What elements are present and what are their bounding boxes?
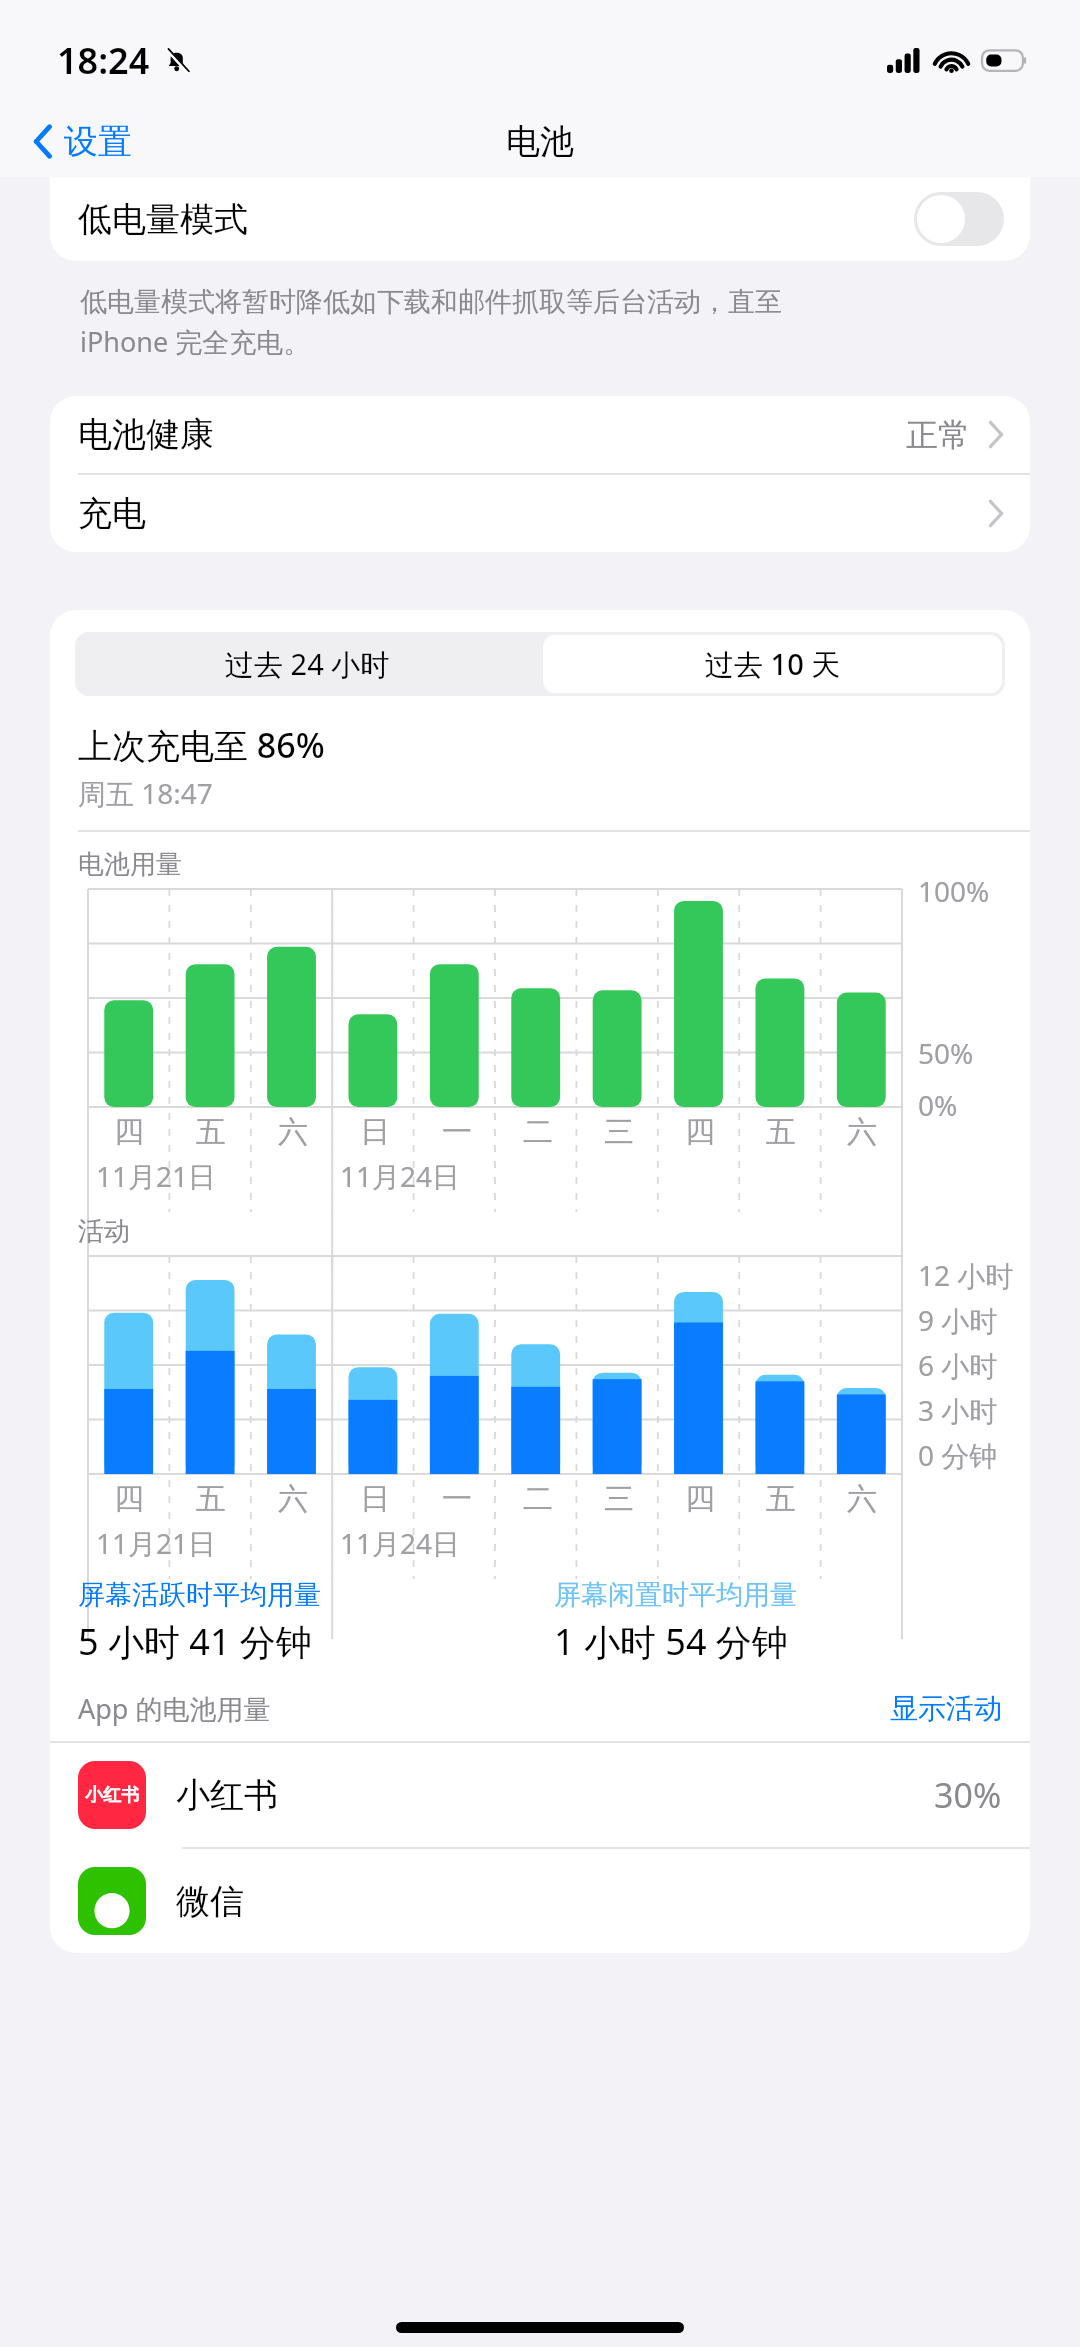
button[interactable]: 小红书 [50, 1743, 1030, 1847]
staticText: 三 [604, 1480, 634, 1518]
staticText: 0% [918, 1086, 958, 1124]
staticText: 100% [918, 872, 990, 910]
staticText: 四 [685, 1480, 715, 1518]
staticText: 充电 [78, 492, 146, 535]
staticText: 30% [934, 1772, 1002, 1818]
staticText: 电池 [506, 120, 574, 163]
staticText: 9 小时 [918, 1301, 998, 1339]
button[interactable]: 设置 [24, 114, 140, 169]
staticText: 日 [360, 1480, 390, 1518]
staticText: 显示活动 [890, 1691, 1002, 1726]
button[interactable]: 电池健康 [50, 396, 1030, 473]
staticText: 屏幕活跃时平均用量 [78, 1578, 321, 1612]
staticText: 50% [918, 1034, 974, 1072]
staticText: 0 分钟 [918, 1436, 998, 1474]
staticText: 活动 [78, 1215, 130, 1248]
staticText: 11月21日 [96, 1524, 217, 1562]
staticText: 屏幕闲置时平均用量 [554, 1578, 797, 1612]
staticText: 四 [114, 1113, 144, 1151]
button[interactable]: 微信 [50, 1849, 1030, 1953]
staticText: 小红书 [85, 1784, 139, 1807]
staticText: 一 [442, 1480, 472, 1518]
button[interactable]: 显示活动 [890, 1691, 1002, 1726]
staticText: 电池健康 [78, 413, 214, 456]
button[interactable]: 过去 24 小时 [75, 632, 540, 696]
staticText: 低电量模式将暂时降低如下载和邮件抓取等后台活动，直至 iPhone 完全充电。 [80, 285, 782, 360]
staticText: 六 [278, 1480, 308, 1518]
staticText: 18:24 [57, 36, 150, 85]
staticText: 六 [847, 1113, 877, 1151]
staticText: 3 小时 [918, 1391, 998, 1429]
staticText: 6 小时 [918, 1346, 998, 1384]
staticText: 二 [523, 1480, 553, 1518]
staticText: 11月24日 [340, 1524, 461, 1562]
staticText: 四 [114, 1480, 144, 1518]
staticText: 五 [196, 1480, 226, 1518]
staticText: 六 [278, 1113, 308, 1151]
staticText: 11月21日 [96, 1157, 217, 1195]
button[interactable]: 低电量模式 [50, 177, 1030, 261]
staticText: 过去 24 小时 [225, 644, 390, 684]
staticText: 1 小时 54 分钟 [554, 1617, 788, 1666]
button[interactable]: 过去 10 天 [543, 635, 1002, 693]
staticText: 五 [196, 1113, 226, 1151]
staticText: 上次充电至 86% [78, 722, 325, 768]
staticText: 12 小时 [918, 1256, 1014, 1294]
staticText: 微信 [176, 1880, 244, 1923]
staticText: 小红书 [176, 1774, 278, 1817]
button[interactable]: 低电量模式开关 [914, 192, 1004, 246]
staticText: 日 [360, 1113, 390, 1151]
staticText: 正常 [906, 415, 970, 455]
button[interactable]: 充电 [50, 475, 1030, 552]
staticText: 5 小时 41 分钟 [78, 1617, 312, 1666]
staticText: 四 [685, 1113, 715, 1151]
staticText: 11月24日 [340, 1157, 461, 1195]
staticText: App 的电池用量 [78, 1690, 271, 1727]
staticText: 设置 [64, 120, 132, 163]
staticText: 五 [766, 1480, 796, 1518]
staticText: 六 [847, 1480, 877, 1518]
staticText: 电池用量 [78, 848, 182, 881]
staticText: 二 [523, 1113, 553, 1151]
staticText: 过去 10 天 [705, 644, 841, 684]
staticText: 周五 18:47 [78, 774, 213, 812]
staticText: 三 [604, 1113, 634, 1151]
staticText: 低电量模式 [78, 198, 248, 241]
staticText: 五 [766, 1113, 796, 1151]
staticText: 一 [442, 1113, 472, 1151]
